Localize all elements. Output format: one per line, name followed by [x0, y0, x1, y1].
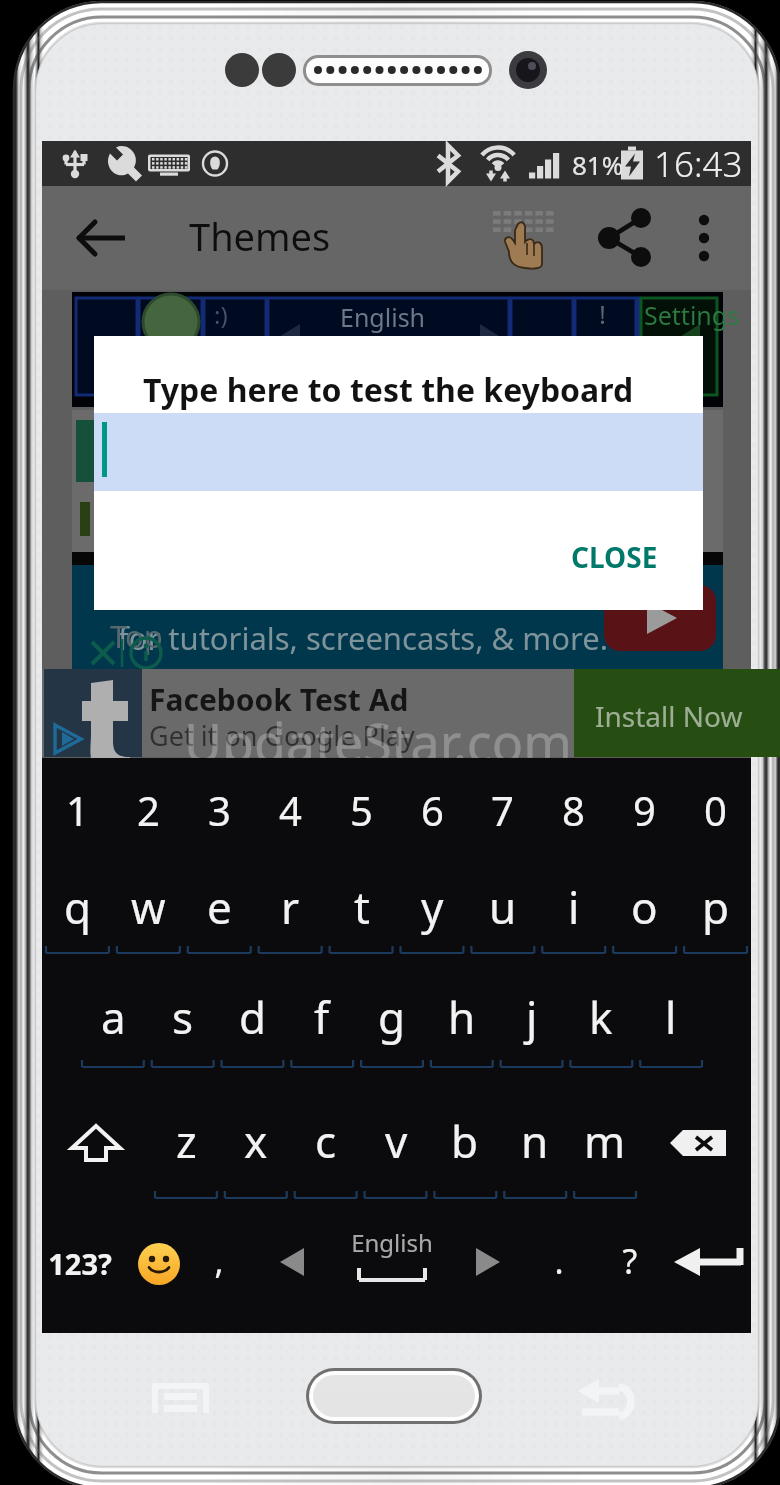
button[interactable]: Space	[356, 1264, 428, 1286]
staticText: 7	[491, 783, 514, 837]
button[interactable]: d	[218, 983, 288, 1051]
button[interactable]: h	[427, 983, 497, 1051]
button[interactable]: 3	[184, 776, 255, 844]
button[interactable]: q	[42, 873, 113, 941]
button[interactable]: 7	[467, 776, 538, 844]
button[interactable]: 2	[113, 776, 184, 844]
button[interactable]: n	[500, 1107, 570, 1175]
button[interactable]: o	[609, 873, 680, 941]
button[interactable]: 1	[42, 776, 113, 844]
staticText: Get it on Google Play	[149, 717, 415, 754]
staticText: b	[451, 1111, 479, 1171]
staticText: 81%	[572, 147, 624, 182]
button[interactable]: x	[221, 1107, 291, 1175]
button[interactable]: i	[538, 873, 609, 941]
button[interactable]: More options	[668, 202, 740, 274]
staticText: d	[239, 987, 267, 1047]
staticText: g	[378, 987, 406, 1047]
button[interactable]: j	[497, 983, 567, 1051]
staticText: 9	[633, 783, 656, 837]
staticText: Type here to test the keyboard	[143, 368, 634, 412]
button[interactable]: ,	[199, 1238, 239, 1284]
button[interactable]: 123?	[32, 1244, 128, 1283]
button[interactable]: Shift	[70, 1124, 122, 1162]
button[interactable]: Enter	[674, 1246, 744, 1278]
button[interactable]: e	[184, 873, 255, 941]
staticText: Settings	[644, 298, 740, 332]
button[interactable]: ?	[610, 1238, 650, 1284]
button[interactable]: v	[361, 1107, 431, 1175]
staticText: 2	[137, 783, 160, 837]
staticText: 3	[208, 783, 231, 837]
staticText: x	[244, 1111, 268, 1171]
staticText: e	[207, 877, 232, 937]
staticText: n	[521, 1111, 549, 1171]
staticText: a	[101, 987, 126, 1047]
button[interactable]: 5	[326, 776, 397, 844]
button[interactable]: Move right	[463, 1244, 507, 1280]
staticText: r	[281, 877, 300, 937]
staticText: t	[354, 877, 370, 937]
staticText: w	[131, 877, 166, 937]
staticText: h	[448, 987, 476, 1047]
button[interactable]: s	[148, 983, 218, 1051]
button[interactable]: k	[566, 983, 636, 1051]
staticText: l	[665, 987, 677, 1047]
button[interactable]: .	[539, 1238, 579, 1284]
staticText: u	[489, 877, 517, 937]
staticText: m	[584, 1111, 626, 1171]
staticText: CLOSE	[571, 538, 658, 576]
staticText: p	[702, 877, 730, 937]
staticText: 16:43	[654, 140, 743, 185]
button[interactable]: t	[326, 873, 397, 941]
button[interactable]: p	[680, 873, 751, 941]
button[interactable]: z	[151, 1107, 221, 1175]
staticText: v	[385, 1111, 408, 1171]
staticText: s	[172, 987, 194, 1047]
staticText: English	[340, 300, 426, 334]
button[interactable]: b	[430, 1107, 500, 1175]
staticText: y	[421, 877, 444, 937]
button[interactable]: Move left	[273, 1244, 317, 1280]
button[interactable]: u	[467, 873, 538, 941]
staticText: i	[568, 877, 580, 937]
staticText: o	[631, 877, 658, 937]
staticText: 0	[704, 783, 727, 837]
staticText: Top	[110, 615, 163, 657]
staticText: f	[314, 987, 330, 1047]
button[interactable]: Share	[585, 198, 665, 278]
button[interactable]: c	[291, 1107, 361, 1175]
staticText: j	[526, 987, 538, 1047]
staticText: k	[589, 987, 613, 1047]
button[interactable]: 8	[538, 776, 609, 844]
button[interactable]: a	[78, 983, 148, 1051]
button[interactable]: Emoji	[137, 1242, 181, 1286]
button[interactable]: 4	[255, 776, 326, 844]
staticText: :)	[214, 298, 228, 331]
staticText: 6	[421, 783, 444, 837]
button[interactable]: Backspace	[670, 1129, 726, 1157]
button[interactable]: CLOSE	[553, 526, 676, 588]
button[interactable]: r	[255, 873, 326, 941]
button[interactable]: 6	[397, 776, 468, 844]
button[interactable]: f	[287, 983, 357, 1051]
staticText: !	[599, 296, 606, 331]
button[interactable]: g	[357, 983, 427, 1051]
button[interactable]: w	[113, 873, 184, 941]
staticText: 5	[350, 783, 373, 837]
button[interactable]: l	[636, 983, 706, 1051]
staticText: for tutorials, screencasts, & more.	[118, 617, 609, 659]
button[interactable]: Test keyboard	[473, 188, 573, 288]
staticText: z	[176, 1111, 197, 1171]
button[interactable]: Back	[64, 200, 140, 276]
staticText: Facebook Test Ad	[149, 679, 409, 720]
staticText: 1	[66, 783, 89, 837]
button[interactable]: 9	[609, 776, 680, 844]
button[interactable]: m	[570, 1107, 640, 1175]
staticText: Themes	[189, 210, 331, 262]
staticText: c	[315, 1111, 337, 1171]
button[interactable]: 0	[680, 776, 751, 844]
button[interactable]: y	[397, 873, 468, 941]
staticText: English	[332, 1226, 452, 1259]
